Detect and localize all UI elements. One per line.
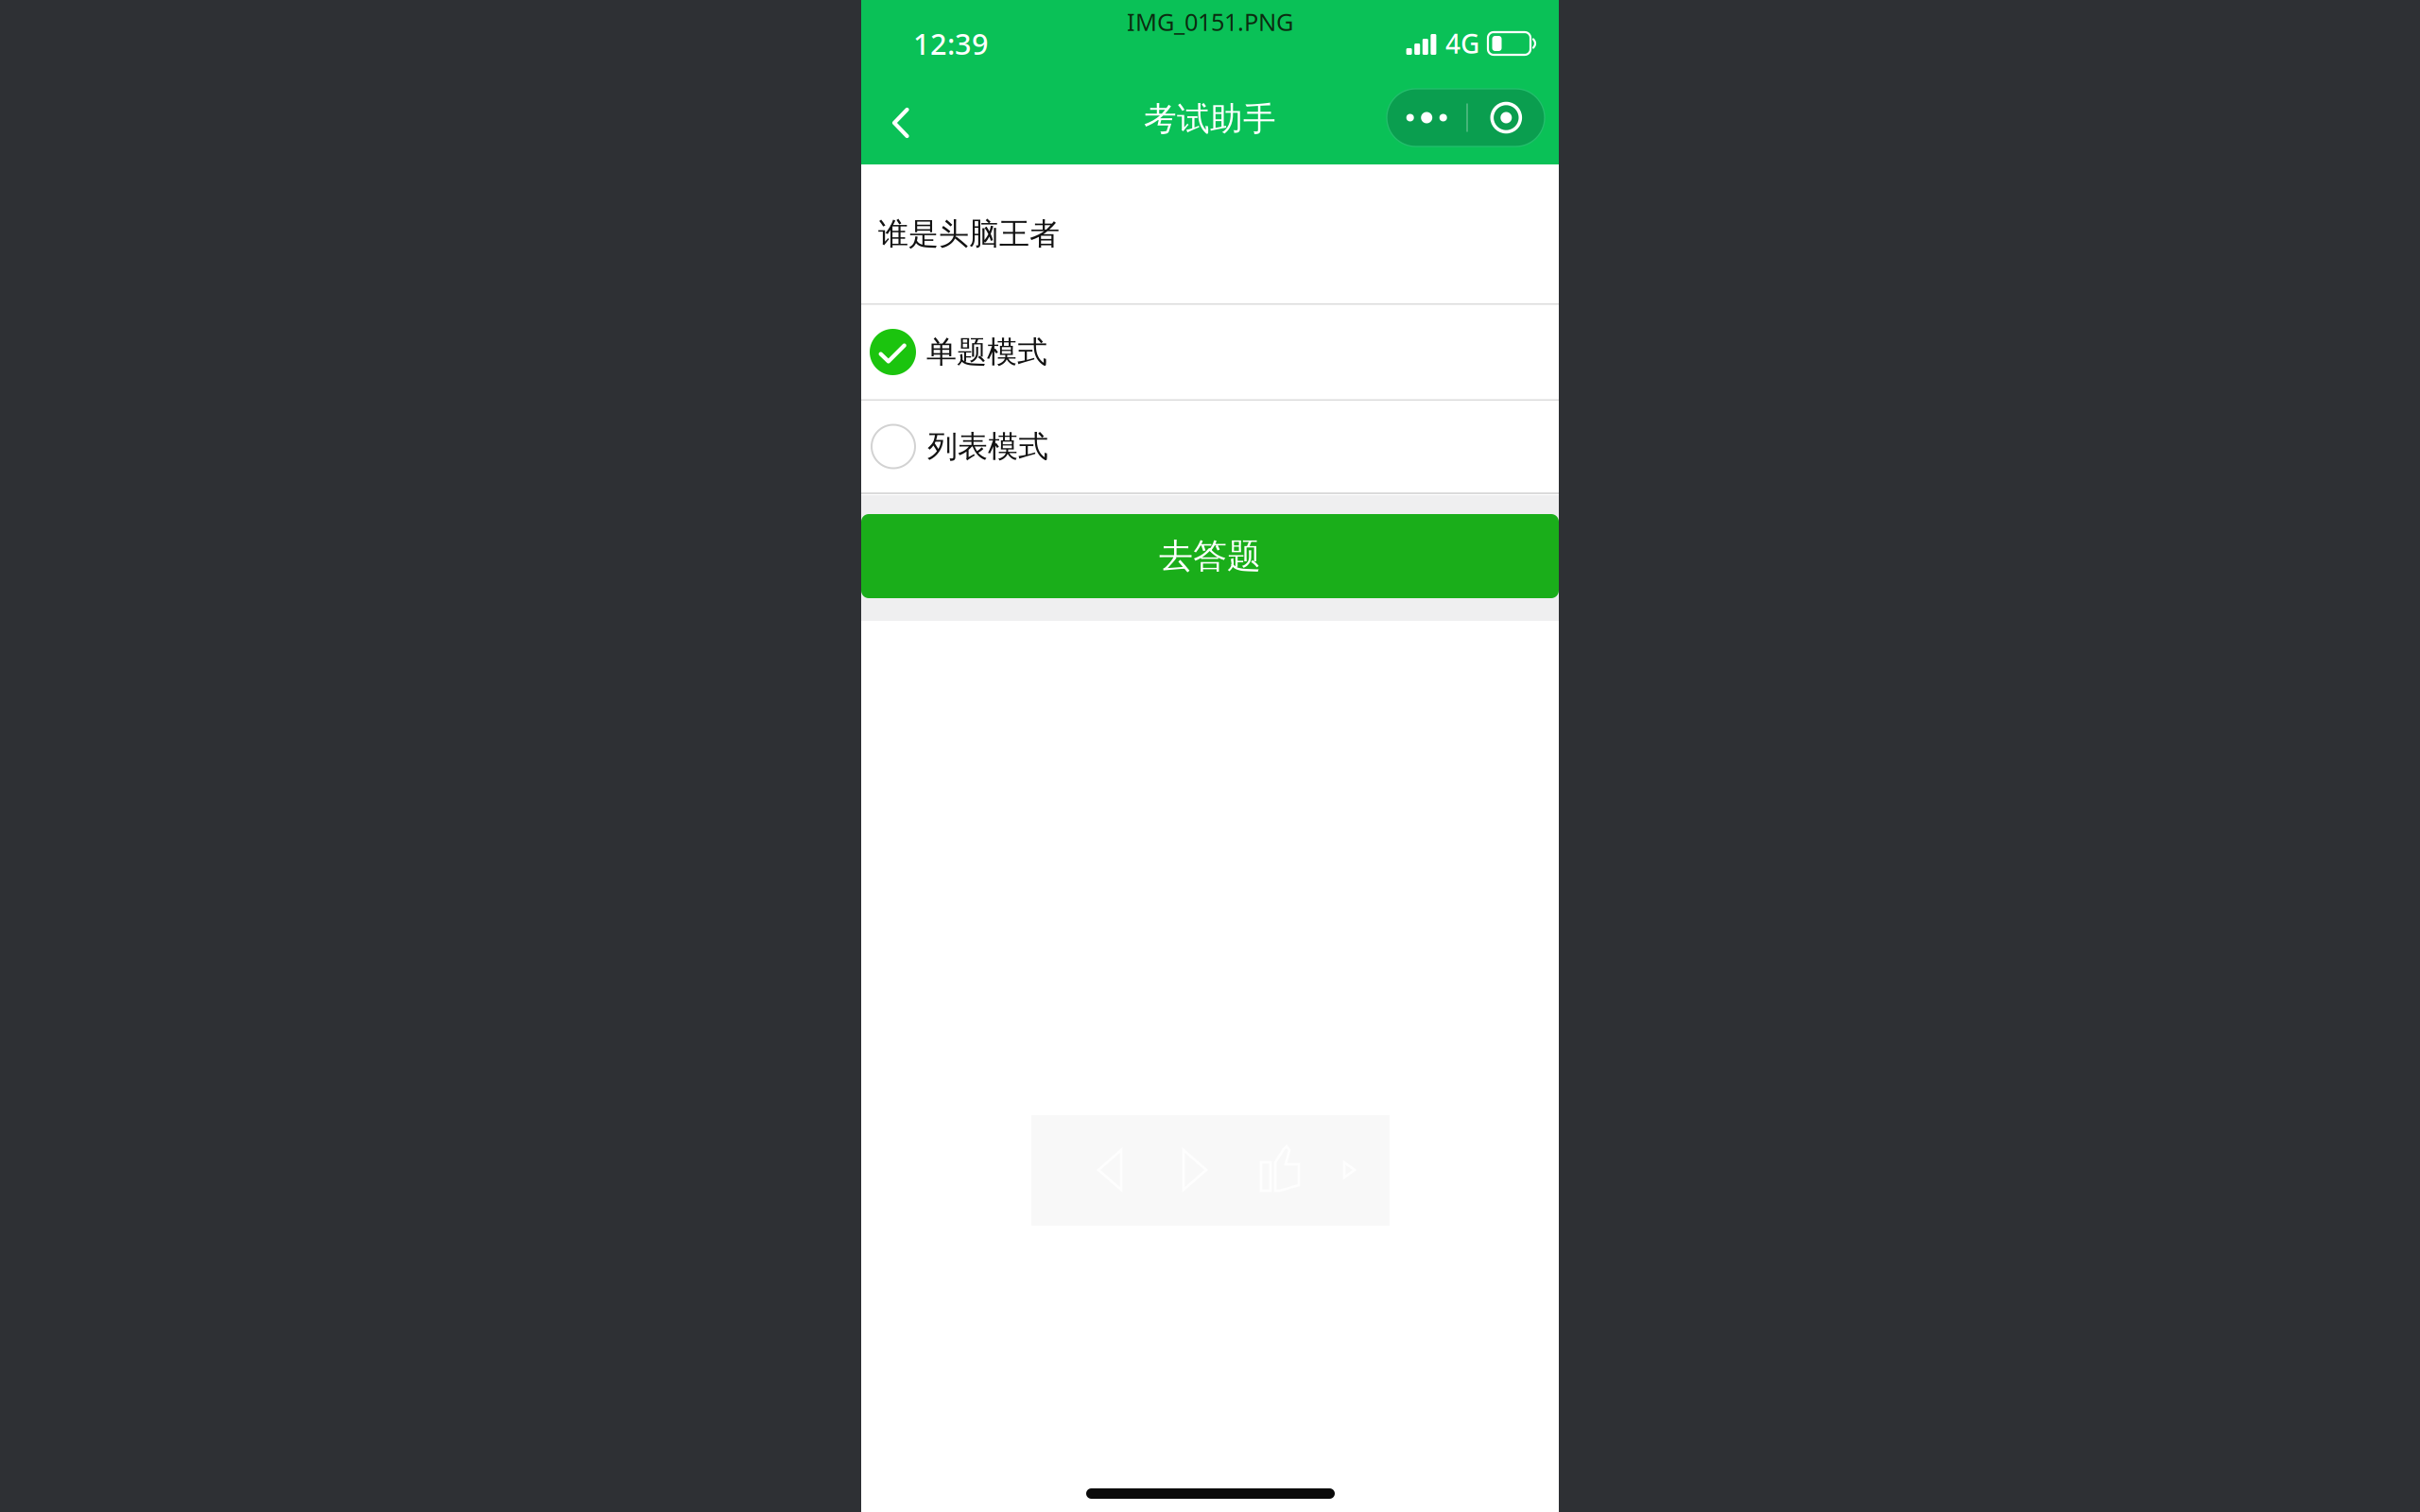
staticText: 12:39: [913, 24, 989, 63]
staticText: 4G: [1445, 26, 1479, 61]
staticText: 单题模式: [926, 333, 1047, 371]
button[interactable]: 去答题: [861, 514, 1559, 598]
button[interactable]: 列表模式: [861, 401, 1559, 492]
button[interactable]: More options: [1387, 89, 1545, 146]
staticText: 去答题: [1159, 535, 1261, 577]
staticText: 考试助手: [1144, 99, 1276, 139]
button[interactable]: Back: [870, 90, 932, 156]
button[interactable]: 单题模式: [861, 305, 1559, 399]
staticText: 列表模式: [927, 428, 1048, 465]
staticText: 谁是头脑王者: [878, 215, 1060, 252]
staticText: IMG_0151.PNG: [1127, 6, 1293, 38]
